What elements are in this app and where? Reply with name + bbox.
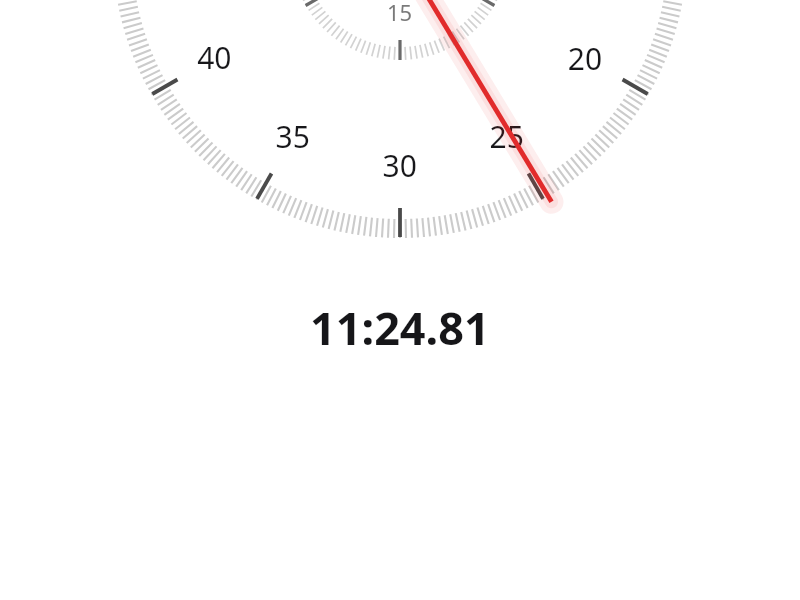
button[interactable]: Stopwatch dial [0,0,800,600]
